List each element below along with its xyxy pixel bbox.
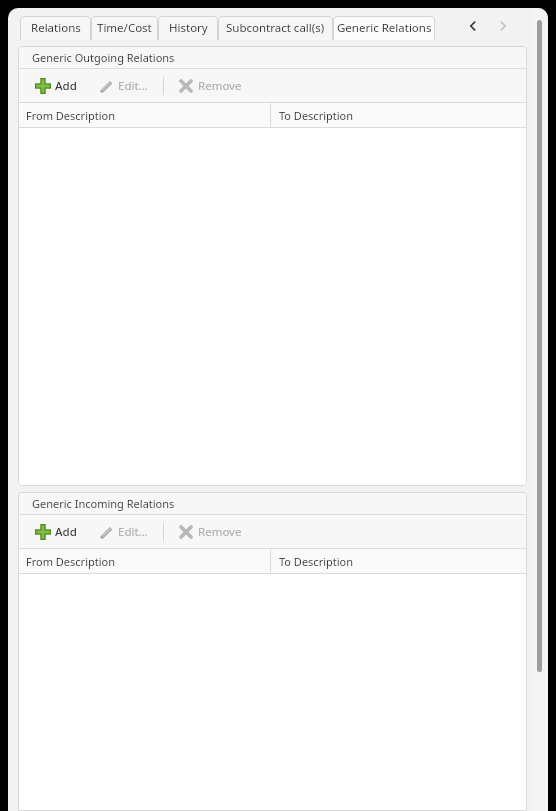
button[interactable]: Subcontract call(s) [218,16,333,40]
button[interactable]: Remove [176,73,245,99]
staticText: History [169,20,208,36]
staticText: Generic Incoming Relations [32,496,175,511]
button[interactable]: From Description [18,103,270,127]
staticText: Edit... [118,524,148,540]
staticText: Add [55,524,77,540]
button[interactable]: History [158,16,218,40]
staticText: From Description [26,554,116,569]
button[interactable]: Add [32,519,80,545]
staticText: Add [55,78,77,94]
button[interactable]: Previous tabs [463,16,483,36]
staticText: Remove [198,78,242,94]
button[interactable]: From Description [18,549,270,573]
button[interactable]: Edit... [96,73,151,99]
button[interactable]: Next tabs [493,16,513,36]
button[interactable]: Relations [20,16,91,40]
button[interactable]: Add [32,73,80,99]
button[interactable]: Generic Relations [333,16,435,40]
staticText: Relations [31,20,81,36]
button[interactable]: To Description [271,103,527,127]
button[interactable]: To Description [271,549,527,573]
staticText: Generic Relations [337,20,432,36]
button[interactable]: Edit... [96,519,151,545]
staticText: From Description [26,108,116,123]
staticText: Time/Cost [97,20,152,36]
staticText: Edit... [118,78,148,94]
button[interactable]: Remove [176,519,245,545]
staticText: Remove [198,524,242,540]
staticText: Generic Outgoing Relations [32,50,175,65]
staticText: To Description [279,554,354,569]
staticText: Subcontract call(s) [226,20,325,36]
button[interactable]: Time/Cost [91,16,158,40]
staticText: To Description [279,108,354,123]
